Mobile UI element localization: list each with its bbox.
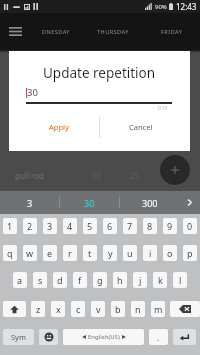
staticText: 25 bbox=[130, 170, 140, 181]
button[interactable]: Cancel bbox=[100, 116, 181, 138]
staticText: c bbox=[76, 303, 81, 315]
button[interactable]: i bbox=[143, 245, 157, 261]
staticText: 2/10 bbox=[157, 105, 168, 112]
staticText: y bbox=[108, 247, 113, 259]
button[interactable]: w bbox=[23, 245, 37, 261]
button[interactable]: a bbox=[13, 272, 27, 288]
button[interactable]: DNESDAY bbox=[31, 13, 81, 50]
staticText: FRIDAY bbox=[161, 28, 183, 35]
button[interactable]: e bbox=[43, 245, 57, 261]
button[interactable]: Emoji bbox=[39, 329, 58, 345]
button[interactable]: Space bbox=[63, 329, 144, 345]
staticText: Apply bbox=[49, 122, 69, 132]
button[interactable]: v bbox=[91, 301, 105, 317]
button[interactable]: r bbox=[63, 245, 77, 261]
staticText: 60 bbox=[92, 170, 102, 181]
button[interactable]: x bbox=[51, 301, 65, 317]
staticText: v bbox=[96, 303, 101, 315]
button[interactable]: u bbox=[123, 245, 137, 261]
button[interactable]: m bbox=[151, 301, 165, 317]
button[interactable]: p bbox=[183, 245, 197, 261]
button[interactable]: 7 bbox=[123, 218, 137, 234]
button[interactable]: z bbox=[31, 301, 45, 317]
staticText: 3 bbox=[27, 197, 33, 209]
button[interactable]: 30 bbox=[60, 191, 119, 214]
staticText: 90% bbox=[155, 3, 167, 11]
staticText: u bbox=[127, 247, 133, 259]
button[interactable]: Shift bbox=[3, 301, 26, 317]
staticText: 6 bbox=[107, 220, 113, 232]
staticText: o bbox=[167, 247, 173, 259]
staticText: r bbox=[68, 247, 72, 259]
staticText: i bbox=[149, 247, 152, 259]
staticText: n bbox=[135, 303, 141, 315]
button[interactable]: d bbox=[53, 272, 67, 288]
button[interactable]: Open navigation menu bbox=[0, 13, 31, 50]
button[interactable]: Add exercise bbox=[160, 155, 190, 185]
staticText: m bbox=[154, 303, 163, 315]
button[interactable]: FRIDAY bbox=[144, 13, 200, 50]
staticText: a bbox=[17, 274, 23, 286]
staticText: z bbox=[36, 303, 41, 315]
button[interactable]: THURSDAY bbox=[81, 13, 144, 50]
staticText: 8 bbox=[147, 220, 153, 232]
staticText: k bbox=[158, 274, 163, 286]
staticText: Update repetition bbox=[43, 64, 156, 82]
button[interactable]: h bbox=[113, 272, 127, 288]
staticText: b bbox=[115, 303, 121, 315]
button[interactable]: y bbox=[103, 245, 117, 261]
staticText: 7 bbox=[127, 220, 133, 232]
staticText: 30 bbox=[84, 197, 95, 209]
staticText: THURSDAY bbox=[97, 28, 129, 35]
button[interactable]: 2 bbox=[23, 218, 37, 234]
staticText: Cancel bbox=[129, 122, 153, 132]
staticText: 2 bbox=[27, 220, 33, 232]
staticText: English(US) bbox=[88, 333, 120, 341]
staticText: 5 bbox=[87, 220, 93, 232]
staticText: 4 bbox=[67, 220, 73, 232]
button[interactable]: 3 bbox=[43, 218, 57, 234]
button[interactable]: Backspace bbox=[170, 301, 200, 317]
button[interactable]: k bbox=[153, 272, 167, 288]
button[interactable]: f bbox=[73, 272, 87, 288]
button[interactable]: 3 bbox=[0, 191, 59, 214]
button[interactable]: c bbox=[71, 301, 85, 317]
button[interactable]: t bbox=[83, 245, 97, 261]
button[interactable]: pull rod bbox=[0, 164, 200, 187]
staticText: e bbox=[47, 247, 53, 259]
button[interactable]: Enter bbox=[173, 329, 196, 345]
button[interactable]: Sym bbox=[3, 329, 34, 345]
staticText: q bbox=[7, 247, 13, 259]
button[interactable]: l bbox=[173, 272, 187, 288]
button[interactable]: 0 bbox=[183, 218, 197, 234]
button[interactable]: s bbox=[33, 272, 47, 288]
staticText: l bbox=[179, 274, 182, 286]
button[interactable]: 8 bbox=[143, 218, 157, 234]
staticText: 9 bbox=[167, 220, 173, 232]
staticText: 12:43 bbox=[176, 1, 197, 12]
staticText: 30 bbox=[27, 86, 38, 99]
button[interactable]: 4 bbox=[63, 218, 77, 234]
staticText: d bbox=[57, 274, 63, 286]
button[interactable]: . bbox=[149, 329, 168, 345]
button[interactable]: o bbox=[163, 245, 177, 261]
staticText: p bbox=[187, 247, 193, 259]
staticText: DNESDAY bbox=[42, 28, 70, 35]
button[interactable]: q bbox=[3, 245, 17, 261]
staticText: g bbox=[97, 274, 103, 286]
button[interactable]: n bbox=[131, 301, 145, 317]
staticText: 3 bbox=[47, 220, 53, 232]
button[interactable]: 9 bbox=[163, 218, 177, 234]
button[interactable]: 5 bbox=[83, 218, 97, 234]
staticText: h bbox=[117, 274, 123, 286]
button[interactable]: 1 bbox=[3, 218, 17, 234]
button[interactable]: b bbox=[111, 301, 125, 317]
staticText: t bbox=[88, 247, 92, 259]
button[interactable]: 6 bbox=[103, 218, 117, 234]
staticText: Sym bbox=[11, 332, 26, 342]
button[interactable]: Apply bbox=[18, 116, 99, 138]
button[interactable]: 300 bbox=[120, 191, 179, 214]
button[interactable]: More suggestions bbox=[179, 191, 200, 214]
button[interactable]: g bbox=[93, 272, 107, 288]
button[interactable]: j bbox=[133, 272, 147, 288]
